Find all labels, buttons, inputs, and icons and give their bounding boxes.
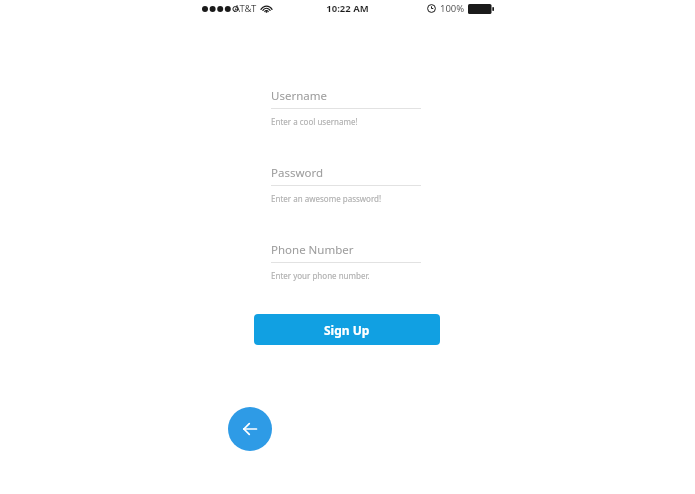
staticText: 10:22 AM — [326, 2, 369, 15]
staticText: Username — [271, 88, 327, 104]
button[interactable]: Back — [228, 407, 272, 451]
staticText: Enter a cool username! — [271, 116, 358, 127]
staticText: Enter an awesome password! — [271, 193, 382, 204]
staticText: Phone Number — [271, 242, 354, 258]
button[interactable]: Sign Up — [254, 314, 440, 345]
staticText: Password — [271, 165, 324, 181]
staticText: Enter your phone number. — [271, 270, 370, 281]
staticText: 100% — [440, 2, 465, 15]
staticText: AT&T — [234, 2, 257, 15]
staticText: Sign Up — [324, 322, 370, 338]
